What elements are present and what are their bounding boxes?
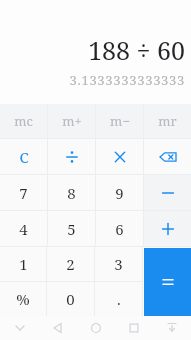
staticText: 3.1333333333333 <box>69 71 185 89</box>
staticText: 8 <box>67 183 76 203</box>
button[interactable]: mc <box>0 104 47 138</box>
button[interactable]: C <box>0 139 47 174</box>
button[interactable]: m+ <box>48 104 95 138</box>
button[interactable]: 1 <box>0 247 46 281</box>
staticText: 0 <box>66 289 75 309</box>
button[interactable]: Back <box>39 316 77 340</box>
button[interactable]: 3 <box>95 247 142 281</box>
button[interactable]: % <box>0 282 46 316</box>
button[interactable]: 4 <box>0 211 47 246</box>
button[interactable]: Recents <box>115 316 153 340</box>
staticText: C <box>19 147 29 167</box>
button[interactable]: Download <box>153 316 191 340</box>
button[interactable]: mr <box>144 104 191 138</box>
button[interactable]: Equals <box>144 248 191 316</box>
button[interactable]: 7 <box>0 175 47 210</box>
button[interactable]: 9 <box>96 175 143 210</box>
button[interactable]: 6 <box>96 211 143 246</box>
button[interactable]: 8 <box>48 175 95 210</box>
staticText: 7 <box>19 183 28 203</box>
staticText: 188 ÷ 60 <box>88 33 185 67</box>
staticText: m+ <box>62 112 82 130</box>
button[interactable]: 2 <box>47 247 94 281</box>
staticText: 5 <box>67 219 76 239</box>
button[interactable]: Backspace <box>144 139 191 174</box>
staticText: % <box>16 289 30 309</box>
button[interactable]: 5 <box>48 211 95 246</box>
staticText: mr <box>158 112 177 130</box>
button[interactable]: 0 <box>47 282 94 316</box>
staticText: 3 <box>114 254 123 274</box>
button[interactable]: m− <box>96 104 143 138</box>
button[interactable]: Hide keyboard <box>0 316 39 340</box>
staticText: 9 <box>115 183 124 203</box>
button[interactable]: Home <box>77 316 115 340</box>
button[interactable]: Minus <box>144 175 191 210</box>
staticText: 4 <box>19 219 28 239</box>
staticText: . <box>117 289 121 309</box>
button[interactable]: . <box>95 282 142 316</box>
staticText: m− <box>110 112 130 130</box>
staticText: 1 <box>19 254 28 274</box>
button[interactable]: Divide <box>48 139 95 174</box>
button[interactable]: Multiply <box>96 139 143 174</box>
staticText: 6 <box>115 219 124 239</box>
staticText: 2 <box>66 254 75 274</box>
button[interactable]: Plus <box>144 211 191 246</box>
staticText: mc <box>14 112 33 130</box>
